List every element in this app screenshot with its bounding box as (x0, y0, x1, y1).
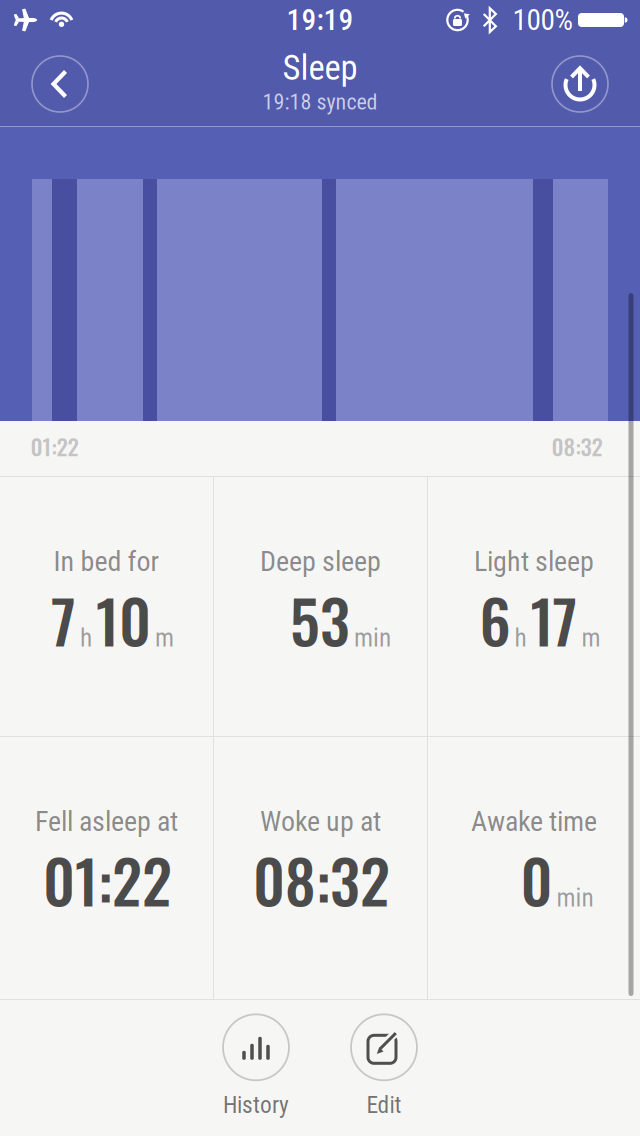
staticText: min (354, 623, 391, 653)
staticText: Light sleep (474, 545, 594, 578)
staticText: min (556, 883, 593, 913)
staticText: m (155, 623, 174, 653)
staticText: h (80, 623, 92, 653)
staticText: Sleep (282, 48, 357, 88)
staticText: In bed for (53, 545, 159, 578)
button[interactable] (32, 56, 88, 112)
staticText: 01:22 (43, 835, 172, 924)
staticText: 10 (96, 575, 151, 664)
staticText: History (223, 1091, 289, 1119)
staticText: Deep sleep (260, 545, 381, 578)
staticText: 7 (51, 575, 76, 664)
staticText: 19:19 (286, 3, 353, 37)
staticText: Fell asleep at (35, 805, 178, 838)
staticText: 17 (530, 575, 577, 664)
button[interactable]: Edit (351, 1014, 417, 1119)
staticText: 0 (520, 835, 552, 924)
staticText: Edit (366, 1091, 401, 1119)
staticText: m (581, 623, 600, 653)
staticText: 01:22 (30, 429, 78, 463)
staticText: 53 (290, 575, 350, 664)
button[interactable]: History (223, 1014, 289, 1119)
staticText: 6 (479, 575, 510, 664)
staticText: 19:18 synced (262, 89, 377, 115)
staticText: 08:32 (551, 429, 602, 463)
staticText: 08:32 (253, 835, 390, 924)
staticText: 100% (512, 3, 573, 37)
staticText: Awake time (471, 805, 597, 838)
staticText: Woke up at (260, 805, 381, 838)
button[interactable] (552, 56, 608, 112)
staticText: h (514, 623, 526, 653)
